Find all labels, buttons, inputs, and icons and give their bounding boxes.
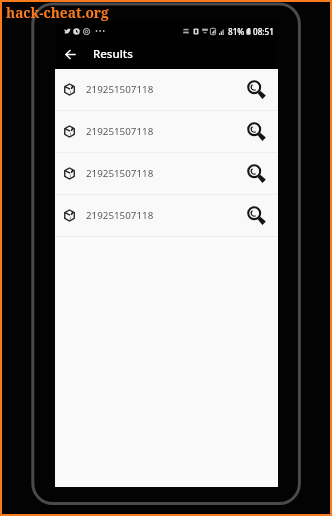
button[interactable]: Search (245, 78, 269, 102)
staticText: hack-cheat.org (6, 3, 109, 22)
button[interactable]: 219251507118 (55, 153, 278, 194)
button[interactable]: Search (245, 162, 269, 186)
button[interactable]: Search (245, 120, 269, 144)
button[interactable]: 219251507118 (55, 69, 278, 110)
staticText: 219251507118 (86, 209, 154, 222)
button[interactable]: 219251507118 (55, 195, 278, 236)
button[interactable]: Search (245, 204, 269, 228)
button[interactable]: 219251507118 (55, 111, 278, 152)
staticText: 219251507118 (86, 83, 154, 96)
button[interactable]: Back (60, 44, 80, 64)
staticText: 219251507118 (86, 125, 154, 138)
staticText: 81% (228, 26, 245, 37)
staticText: 219251507118 (86, 167, 154, 180)
staticText: Results (93, 46, 133, 62)
staticText: 08:51 (253, 26, 274, 37)
